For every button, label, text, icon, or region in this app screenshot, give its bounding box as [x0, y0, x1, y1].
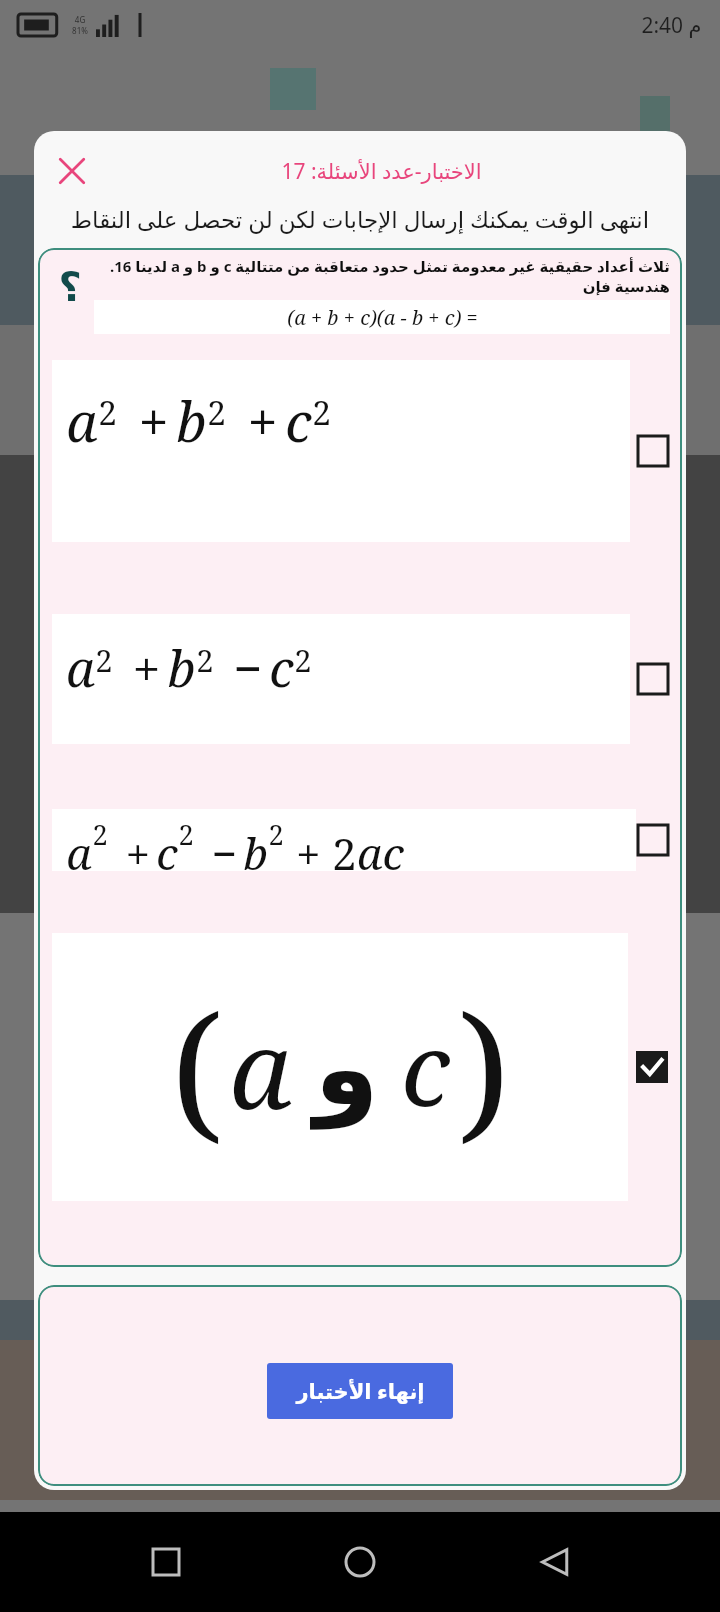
staticText: 2 — [294, 639, 312, 681]
staticText: 2 — [268, 816, 284, 853]
staticText: + — [108, 823, 156, 871]
staticText: و — [314, 1007, 379, 1128]
staticText: انتهى الوقت يمكنك إرسال الإجابات لكن لن … — [56, 203, 664, 234]
staticText: 4G 81% — [72, 14, 88, 36]
staticText: c — [156, 823, 178, 871]
button[interactable]: رجوع — [526, 1533, 584, 1591]
button[interactable]: a — [52, 809, 668, 871]
staticText: ) — [458, 965, 510, 1169]
staticText: 2 — [95, 639, 113, 681]
staticText: 2 — [312, 389, 331, 435]
button[interactable]: a — [52, 614, 668, 744]
staticText: c — [285, 384, 312, 458]
staticText: a — [229, 994, 292, 1141]
staticText: b — [167, 634, 196, 702]
button[interactable]: ( — [52, 933, 668, 1201]
staticText: b — [176, 384, 207, 458]
button[interactable]: غير محدد — [638, 436, 668, 466]
staticText: ( — [171, 965, 223, 1169]
staticText: + — [226, 384, 285, 458]
staticText: a — [66, 823, 92, 871]
staticText: a — [66, 384, 98, 458]
staticText: ‎.16 لدينا a و b و c ثلاث أعداد حقيقية غ… — [94, 256, 670, 296]
staticText: م 2:40 — [641, 11, 702, 40]
staticText: 2 — [178, 816, 194, 853]
staticText: c — [269, 634, 294, 702]
staticText: 2 — [207, 389, 226, 435]
staticText: 2 — [92, 816, 108, 853]
button[interactable]: إنهاء الأختبار — [267, 1363, 453, 1419]
button[interactable]: محدد — [636, 1051, 668, 1083]
staticText: إنهاء الأختبار — [296, 1377, 425, 1406]
staticText: c — [401, 999, 450, 1135]
staticText: ac — [357, 823, 404, 871]
button[interactable]: التطبيقات الأخيرة — [137, 1533, 195, 1591]
staticText: b — [243, 823, 268, 871]
button[interactable]: غير محدد — [638, 825, 668, 855]
staticText: + — [113, 634, 167, 702]
staticText: − — [214, 634, 269, 702]
staticText: + — [117, 384, 176, 458]
staticText: الاختبار-عدد الأسئلة: 17 — [281, 157, 482, 186]
button[interactable]: غير محدد — [638, 664, 668, 694]
button[interactable]: الرئيسية — [331, 1533, 389, 1591]
staticText: a — [66, 634, 95, 702]
staticText: 2 — [196, 639, 214, 681]
staticText: (a + b + c)(a − b + c) = — [287, 304, 478, 331]
staticText: − — [194, 823, 243, 871]
button[interactable]: إغلاق — [44, 143, 100, 199]
staticText: + 2 — [284, 823, 357, 871]
button[interactable]: a — [52, 360, 668, 542]
staticText: ؟ — [58, 264, 82, 311]
staticText: 2 — [98, 389, 117, 435]
